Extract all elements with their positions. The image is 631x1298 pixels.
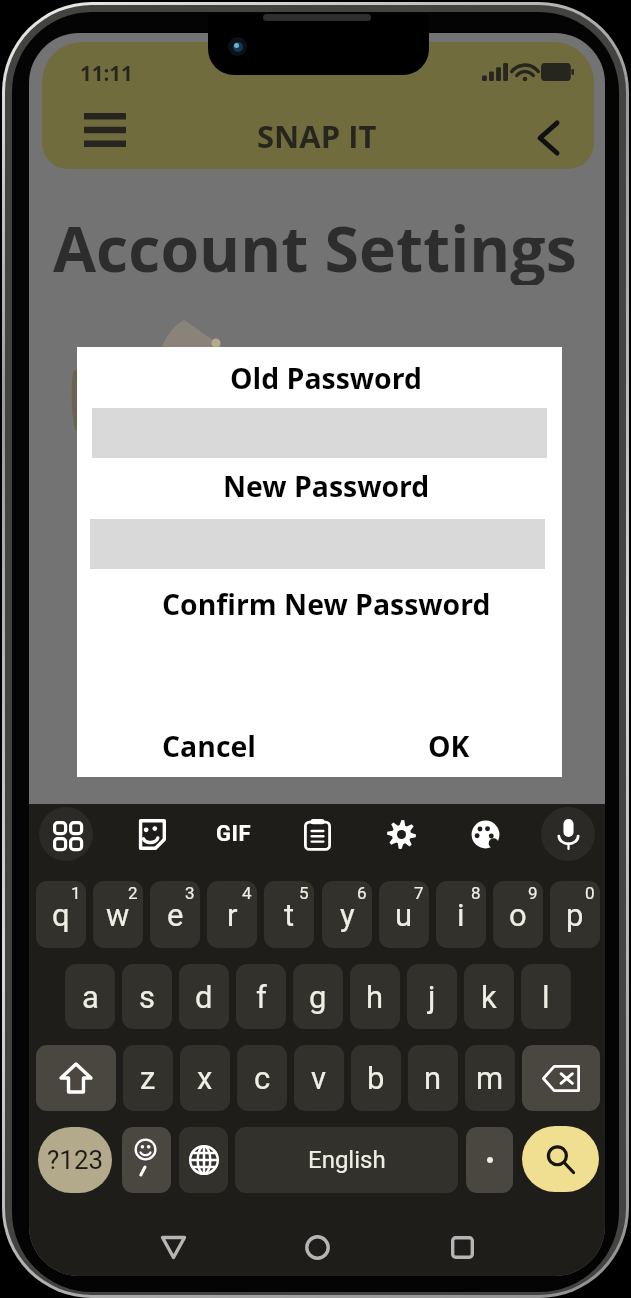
button[interactable]: OK — [389, 722, 509, 770]
staticText: 3 — [185, 883, 195, 903]
button[interactable]: d — [179, 964, 229, 1029]
staticText: 1 — [71, 883, 81, 903]
button[interactable]: e — [150, 881, 200, 948]
staticText: 6 — [357, 883, 367, 903]
staticText: 9 — [528, 883, 538, 903]
staticText: s — [139, 979, 155, 1015]
staticText: g — [309, 979, 327, 1015]
button[interactable]: Apps — [30, 804, 102, 864]
button[interactable]: x — [180, 1045, 230, 1111]
staticText: English — [308, 1146, 386, 1174]
staticText: m — [476, 1060, 504, 1096]
button[interactable]: s — [122, 964, 172, 1029]
staticText: p — [566, 897, 584, 933]
staticText: ?123 — [47, 1145, 104, 1175]
staticText: 2 — [128, 883, 138, 903]
button[interactable]: SNAP IT — [180, 106, 454, 166]
staticText: b — [367, 1060, 385, 1096]
staticText: x — [197, 1060, 213, 1096]
staticText: Account Settings — [53, 205, 577, 285]
staticText: t — [284, 897, 295, 933]
button[interactable]: a — [65, 964, 115, 1029]
staticText: GIF — [216, 821, 251, 847]
staticText: SNAP IT — [257, 115, 377, 157]
staticText: e — [167, 897, 184, 933]
staticText: i — [457, 897, 465, 933]
button[interactable]: g — [293, 964, 343, 1029]
button[interactable]: w — [93, 881, 143, 948]
button[interactable]: m — [465, 1045, 515, 1111]
button[interactable]: Stickers — [114, 804, 186, 864]
button[interactable]: ?123 — [38, 1127, 112, 1193]
staticText: w — [106, 897, 130, 933]
staticText: j — [428, 979, 436, 1015]
button[interactable]: Recent apps — [422, 1217, 502, 1276]
button[interactable]: Back — [514, 105, 582, 171]
staticText: u — [395, 897, 413, 933]
staticText: d — [195, 979, 213, 1015]
button[interactable]: y — [322, 881, 372, 948]
button[interactable]: Shift — [36, 1045, 116, 1111]
button[interactable]: i — [436, 881, 486, 948]
button[interactable]: f — [236, 964, 286, 1029]
staticText: 0 — [585, 883, 595, 903]
staticText: 8 — [471, 883, 481, 903]
staticText: OK — [428, 727, 470, 766]
button[interactable]: GIF — [197, 804, 269, 864]
staticText: Confirm New Password — [162, 585, 491, 624]
button[interactable]: Change language — [179, 1127, 228, 1193]
button[interactable]: h — [350, 964, 400, 1029]
staticText: r — [227, 897, 238, 933]
button[interactable]: Theme — [449, 804, 521, 864]
button[interactable]: English — [235, 1127, 458, 1193]
button[interactable]: u — [379, 881, 429, 948]
button[interactable]: Clipboard — [281, 804, 353, 864]
button[interactable]: j — [407, 964, 457, 1029]
button[interactable]: n — [408, 1045, 458, 1111]
button[interactable]: o — [493, 881, 543, 948]
button[interactable]: v — [294, 1045, 344, 1111]
button[interactable]: l — [521, 964, 571, 1029]
staticText: 11:11 — [80, 59, 133, 83]
staticText: 4 — [242, 883, 252, 903]
button[interactable]: r — [207, 881, 257, 948]
button[interactable]: k — [464, 964, 514, 1029]
staticText: New Password — [223, 467, 430, 506]
staticText: c — [254, 1060, 271, 1096]
button[interactable]: Cancel — [133, 722, 285, 770]
staticText: l — [542, 979, 550, 1015]
staticText: Cancel — [162, 727, 256, 766]
button[interactable]: Voice input — [532, 804, 604, 864]
button[interactable]: Period — [466, 1127, 513, 1193]
staticText: 7 — [414, 883, 424, 903]
staticText: z — [140, 1060, 156, 1096]
staticText: v — [311, 1060, 327, 1096]
button[interactable]: Search — [522, 1126, 599, 1192]
staticText: q — [52, 897, 70, 933]
button[interactable]: c — [237, 1045, 287, 1111]
staticText: Old Password — [230, 359, 422, 398]
staticText: k — [481, 979, 497, 1015]
button[interactable]: q — [36, 881, 86, 948]
button[interactable]: t — [264, 881, 314, 948]
button[interactable]: Back — [133, 1217, 213, 1276]
staticText: h — [366, 979, 384, 1015]
staticText: o — [509, 897, 527, 933]
staticText: a — [82, 979, 99, 1015]
staticText: y — [340, 897, 355, 933]
button[interactable]: Open navigation menu — [64, 97, 146, 163]
button[interactable]: z — [123, 1045, 173, 1111]
staticText: f — [256, 979, 267, 1015]
button[interactable]: Settings — [365, 804, 437, 864]
button[interactable]: Home — [277, 1217, 357, 1276]
staticText: 5 — [299, 883, 309, 903]
button[interactable]: Backspace — [522, 1045, 600, 1111]
staticText: n — [424, 1060, 442, 1096]
button[interactable]: Emoji — [122, 1127, 171, 1193]
button[interactable]: p — [550, 881, 600, 948]
button[interactable]: b — [351, 1045, 401, 1111]
